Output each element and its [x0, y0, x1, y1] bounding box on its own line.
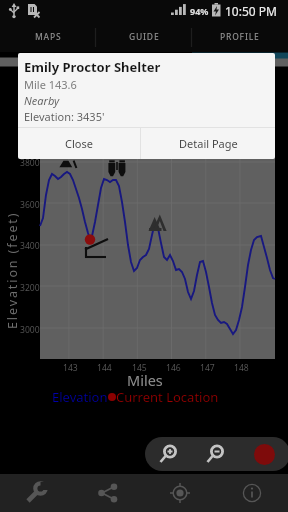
staticText: GUIDE: [129, 31, 160, 43]
staticText: 3600: [20, 199, 40, 211]
staticText: 146: [166, 362, 181, 374]
staticText: Nearby: [24, 93, 60, 108]
button[interactable]: Info: [216, 474, 288, 512]
button[interactable]: Share: [72, 474, 144, 512]
staticText: 3400: [20, 240, 40, 252]
staticText: 3000: [20, 324, 40, 336]
staticText: Elevation: 3435': [24, 109, 105, 124]
staticText: 145: [132, 362, 147, 374]
button[interactable]: Close: [18, 128, 140, 159]
button[interactable]: Detail Page: [141, 128, 275, 159]
staticText: Current Location: [116, 388, 219, 406]
button[interactable]: MAPS: [0, 22, 96, 52]
staticText: 3200: [20, 282, 40, 294]
staticText: Elevation: [52, 388, 108, 406]
staticText: Miles: [127, 370, 163, 390]
staticText: 144: [97, 362, 112, 374]
button[interactable]: Settings: [0, 474, 72, 512]
staticText: MAPS: [35, 31, 62, 43]
staticText: Detail Page: [179, 136, 238, 151]
button[interactable]: PROFILE: [192, 22, 288, 52]
button[interactable]: Zoom out: [191, 437, 239, 471]
button[interactable]: Record track: [239, 437, 288, 471]
staticText: Close: [65, 136, 93, 151]
staticText: PROFILE: [220, 31, 260, 43]
button[interactable]: Zoom in: [145, 437, 191, 471]
button[interactable]: My location: [144, 474, 216, 512]
staticText: Emily Proctor Shelter: [24, 58, 161, 76]
staticText: 147: [200, 362, 215, 374]
staticText: 143: [63, 362, 78, 374]
staticText: Mile 143.6: [24, 77, 77, 92]
button[interactable]: GUIDE: [96, 22, 192, 52]
staticText: 148: [234, 362, 249, 374]
staticText: 10:50 PM: [225, 3, 277, 19]
staticText: 3800: [20, 157, 40, 169]
staticText: Elevation (feet): [4, 211, 21, 329]
staticText: 94%: [190, 5, 209, 17]
